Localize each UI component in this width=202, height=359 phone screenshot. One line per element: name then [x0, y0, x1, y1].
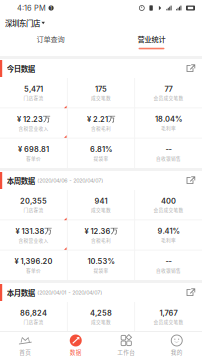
button[interactable]: 我的	[151, 332, 202, 359]
button[interactable]: 订单查询	[0, 30, 101, 56]
staticText: 毛利率	[161, 237, 176, 243]
staticText: 毛利率	[161, 125, 176, 131]
staticText: 首页	[19, 348, 31, 356]
staticText: 会员成交笔数	[153, 206, 183, 213]
staticText: ¥ 12.23万	[17, 114, 50, 124]
button[interactable]: 导出	[185, 175, 202, 185]
staticText: 今日数据	[7, 63, 35, 74]
button[interactable]: 导出	[185, 287, 202, 297]
staticText: 深圳东门店	[5, 18, 40, 28]
staticText: (2020/04/06 - 2020/04/07)	[37, 177, 103, 184]
staticText: 5,471	[24, 84, 43, 93]
staticText: ¥ 2.21万	[87, 114, 115, 124]
staticText: 本周数据	[7, 175, 35, 186]
staticText: 本月数据	[7, 287, 35, 298]
staticText: 9.41%	[157, 227, 179, 236]
staticText: --	[165, 145, 171, 154]
staticText: 我的	[171, 348, 183, 356]
staticText: 提袋率	[93, 155, 108, 162]
staticText: 941	[94, 196, 107, 205]
staticText: 6.81%	[90, 145, 112, 154]
staticText: 会员成交笔数	[153, 94, 183, 101]
staticText: 含税营业收入	[18, 125, 48, 132]
button[interactable]: 首页	[0, 332, 50, 359]
staticText: 1,767	[159, 308, 177, 317]
staticText: ¥ 131.38万	[15, 226, 51, 236]
staticText: 会员成交笔数	[153, 318, 183, 325]
staticText: 含税毛利	[91, 237, 111, 244]
staticText: 4,258	[90, 308, 112, 317]
staticText: --	[165, 257, 171, 266]
staticText: ¥ 1,396.20	[14, 257, 52, 266]
staticText: 自收银销售	[156, 155, 181, 162]
button[interactable]: 深圳东门店	[0, 16, 50, 30]
staticText: 工作台	[117, 348, 135, 356]
button[interactable]: 营业统计	[101, 30, 202, 56]
staticText: 自收银销售	[156, 267, 181, 274]
staticText: 175	[95, 84, 107, 93]
staticText: 门店客流	[23, 94, 43, 101]
staticText: 400	[161, 196, 176, 205]
staticText: 门店客流	[23, 206, 43, 213]
staticText: 客单价	[26, 267, 41, 274]
staticText: ¥ 698.81	[18, 145, 49, 154]
staticText: 客单价	[26, 155, 41, 162]
button[interactable]: 导出	[185, 63, 202, 73]
staticText: 1	[50, 5, 52, 11]
staticText: 成交笔数	[91, 94, 111, 101]
staticText: 提袋率	[93, 267, 108, 274]
staticText: 20,355	[20, 196, 47, 205]
staticText: 4:16 PM	[17, 3, 46, 12]
button[interactable]: 数据	[50, 332, 101, 359]
staticText: 含税毛利	[91, 125, 111, 132]
staticText: (2020/04/01 - 2020/04/07)	[37, 289, 102, 296]
staticText: 18.04%	[155, 115, 182, 124]
staticText: 订单查询	[36, 34, 64, 44]
staticText: 门店客流	[23, 318, 43, 325]
staticText: 10.53%	[87, 257, 114, 266]
staticText: 数据	[70, 348, 82, 356]
button[interactable]: 工作台	[101, 332, 151, 359]
staticText: 成交笔数	[91, 206, 111, 213]
staticText: 成交笔数	[91, 318, 111, 325]
staticText: 77	[164, 84, 172, 93]
staticText: ¥ 12.36万	[84, 226, 117, 236]
staticText: 含税营业收入	[18, 237, 48, 244]
staticText: 86,824	[20, 308, 47, 317]
staticText: 营业统计	[137, 34, 165, 44]
